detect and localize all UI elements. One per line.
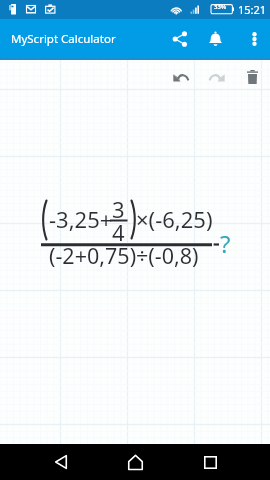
staticText: MyScript Calculator xyxy=(11,31,116,47)
staticText: 15:21 xyxy=(238,2,267,17)
button[interactable]: Undo xyxy=(163,60,198,94)
staticText: 33% xyxy=(214,3,227,11)
staticText: -3,25+ xyxy=(49,204,113,234)
button[interactable]: Notifications xyxy=(198,19,232,58)
staticText: 4 xyxy=(112,217,125,247)
button[interactable]: Recents xyxy=(186,444,234,480)
staticText: ? xyxy=(220,227,231,260)
button[interactable]: Redo xyxy=(199,60,234,94)
button[interactable]: Delete xyxy=(235,60,270,94)
button[interactable]: Back xyxy=(37,444,85,480)
button[interactable]: More options xyxy=(236,19,270,58)
button[interactable]: Home xyxy=(111,444,159,480)
staticText: 3 xyxy=(112,194,125,224)
staticText: ×(-6,25) xyxy=(136,204,213,234)
button[interactable]: Share xyxy=(162,19,198,58)
staticText: (-2+0,75)÷(-0,8) xyxy=(49,241,199,270)
